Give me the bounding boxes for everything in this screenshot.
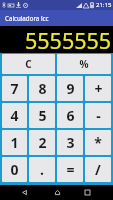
staticText: = (66, 160, 75, 179)
button[interactable]: * (85, 130, 111, 155)
button[interactable]: . (29, 157, 55, 182)
staticText: C (25, 57, 32, 71)
button[interactable]: 9 (57, 76, 83, 101)
staticText: / (95, 160, 101, 179)
staticText: 8 (38, 79, 47, 98)
staticText: * (94, 133, 102, 152)
staticText: 5 (38, 106, 47, 125)
staticText: 7 (10, 79, 19, 98)
button[interactable]: / (85, 157, 111, 182)
staticText: + (94, 79, 103, 98)
button[interactable]: 7 (2, 76, 27, 101)
button[interactable]: + (85, 76, 111, 101)
staticText: 2 (38, 133, 47, 152)
button[interactable]: - (85, 103, 111, 128)
button[interactable]: Home (44, 185, 70, 200)
button[interactable]: 6 (57, 103, 83, 128)
staticText: % (79, 57, 89, 71)
button[interactable]: 4 (2, 103, 27, 128)
staticText: 6 (66, 106, 75, 125)
staticText: 21:15 (96, 1, 112, 9)
button[interactable]: 5 (29, 103, 55, 128)
staticText: Calculadora lcc (5, 14, 49, 22)
button[interactable]: 3 (57, 130, 83, 155)
staticText: 4 (10, 106, 19, 125)
button[interactable]: 0 (2, 157, 27, 182)
staticText: - (96, 106, 101, 125)
button[interactable]: C (2, 54, 55, 74)
button[interactable]: = (57, 157, 83, 182)
button[interactable]: % (57, 54, 111, 74)
staticText: 1 (10, 133, 19, 152)
button[interactable]: Recent apps (81, 185, 94, 200)
button[interactable]: 1 (2, 130, 27, 155)
staticText: 0 (10, 160, 19, 179)
staticText: 3 (66, 133, 75, 152)
staticText: 5555555 (25, 26, 112, 53)
staticText: . (40, 160, 44, 179)
button[interactable]: 2 (29, 130, 55, 155)
button[interactable]: Back (16, 185, 32, 200)
staticText: 9 (66, 79, 75, 98)
button[interactable]: 8 (29, 76, 55, 101)
